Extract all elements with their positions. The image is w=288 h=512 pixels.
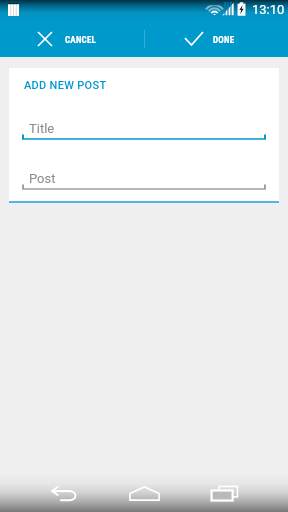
button[interactable]: DONE: [144, 20, 288, 57]
button[interactable]: Recents: [201, 468, 248, 512]
staticText: Title: [29, 121, 55, 136]
staticText: DONE: [213, 35, 235, 46]
staticText: CANCEL: [65, 35, 97, 46]
staticText: ADD NEW POST: [24, 79, 107, 92]
button[interactable]: Home: [121, 468, 168, 512]
staticText: 13:10: [252, 2, 285, 17]
button[interactable]: CANCEL: [0, 20, 144, 57]
button[interactable]: Title: [22, 121, 266, 149]
staticText: Post: [29, 171, 56, 186]
button[interactable]: Post: [22, 171, 266, 199]
button[interactable]: Back: [40, 468, 87, 512]
